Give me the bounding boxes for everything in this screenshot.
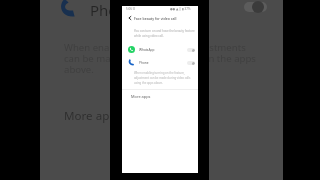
staticText: When enabling turning on the feature, ad…	[134, 71, 195, 85]
button[interactable]: Toggle	[244, 2, 267, 12]
staticText: More apps	[131, 94, 151, 99]
staticText: ●● ▲ ░ ▮ 37%	[170, 7, 191, 11]
staticText: You can turn on and have the beauty feat…	[134, 29, 195, 37]
staticText: Phone	[90, 0, 136, 20]
staticText: More apps	[64, 108, 122, 124]
staticText: 5:06 ☰	[126, 7, 136, 11]
button[interactable]: Back	[125, 13, 134, 22]
staticText: WhatsApp	[139, 48, 155, 52]
button[interactable]: WhatsApp	[122, 43, 198, 56]
staticText: Phone	[139, 61, 149, 65]
staticText: When enabling the feature, adjustments c…	[64, 41, 256, 76]
staticText: Face beauty for video call	[134, 16, 177, 21]
button[interactable]: Phone	[122, 56, 198, 69]
